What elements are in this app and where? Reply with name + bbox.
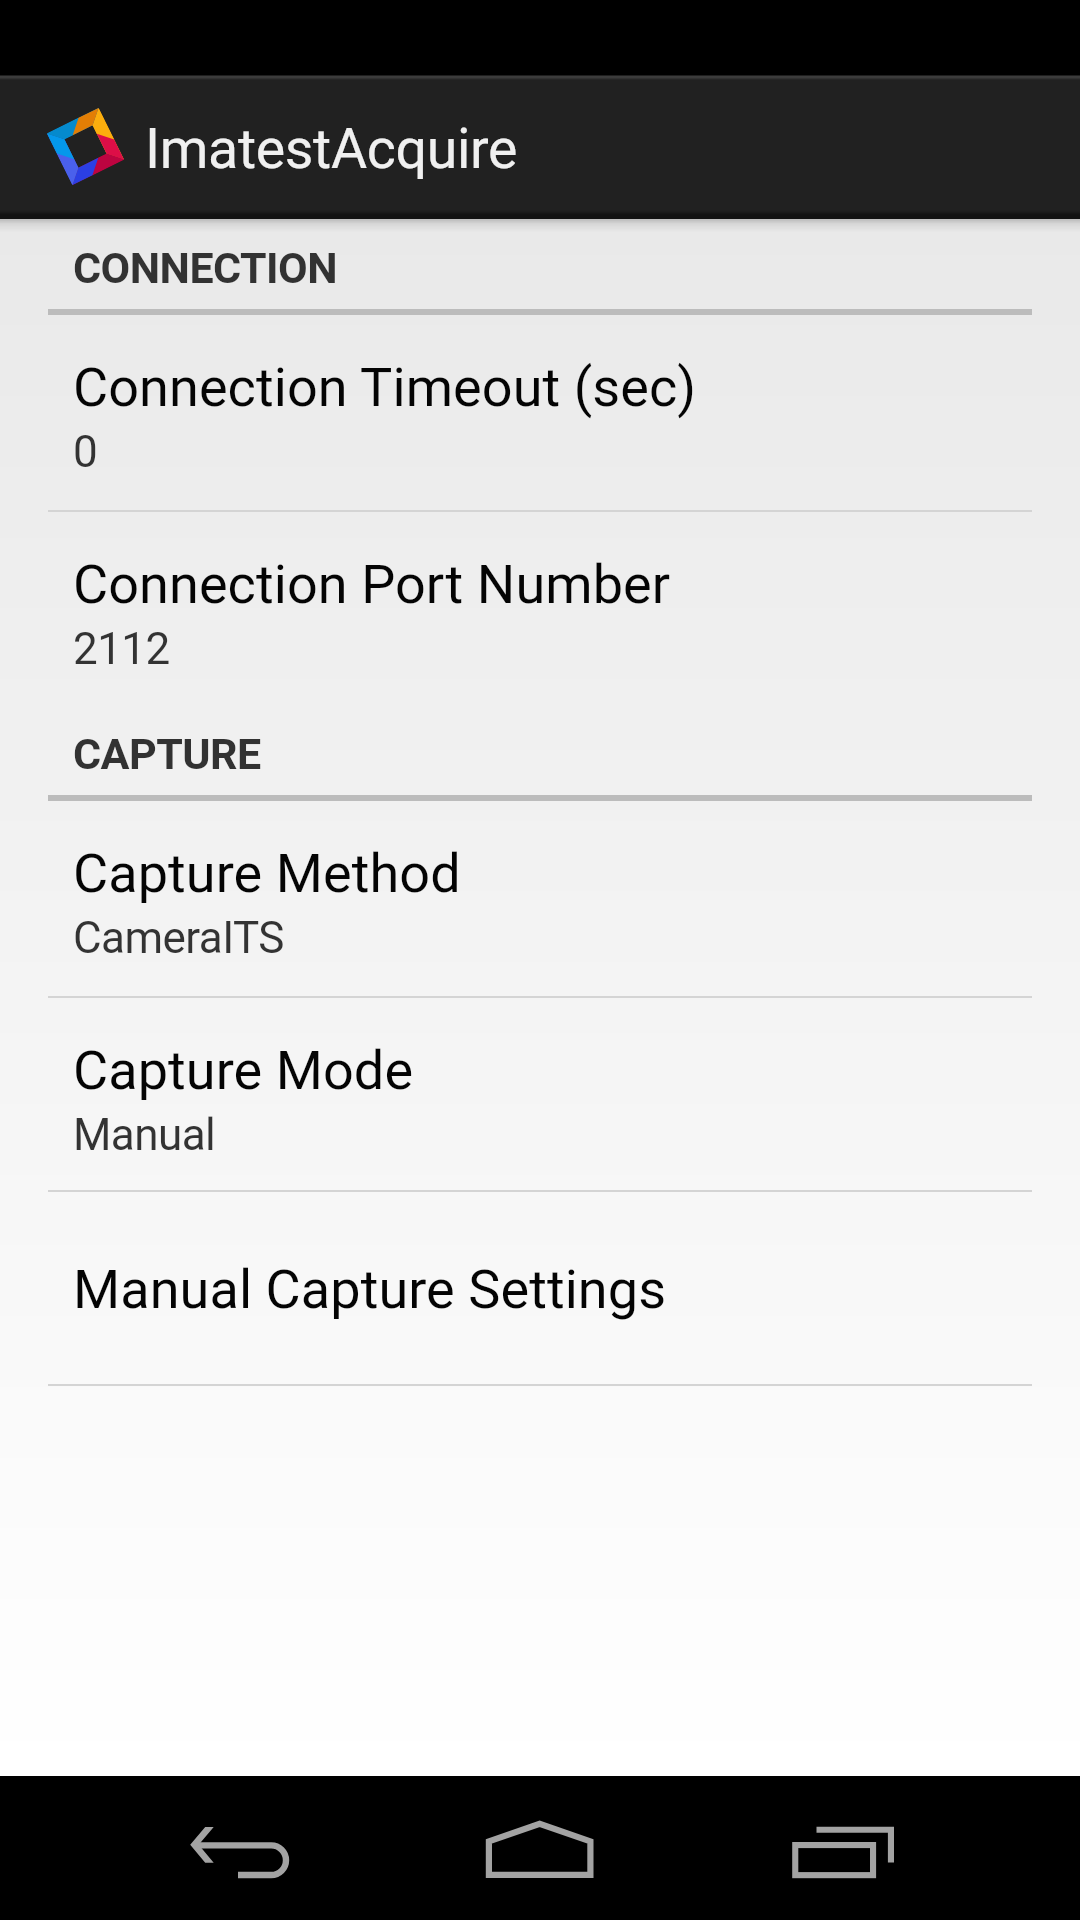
button[interactable]: Connection Port Number bbox=[0, 512, 1080, 707]
button[interactable]: Manual Capture Settings bbox=[0, 1192, 1080, 1384]
staticText: 2112 bbox=[73, 623, 170, 675]
staticText: ImatestAcquire bbox=[145, 117, 518, 182]
staticText: Connection Timeout (sec) bbox=[73, 356, 697, 419]
staticText: Capture Method bbox=[73, 842, 461, 905]
staticText: CONNECTION bbox=[73, 243, 338, 293]
button[interactable]: Capture Method bbox=[0, 801, 1080, 996]
button[interactable]: Home bbox=[480, 1776, 600, 1920]
button[interactable]: Back bbox=[150, 1776, 330, 1920]
staticText: Connection Port Number bbox=[73, 553, 671, 616]
staticText: Manual bbox=[73, 1109, 216, 1161]
button[interactable]: ImatestAcquire bbox=[0, 78, 1080, 213]
staticText: Manual Capture Settings bbox=[73, 1258, 667, 1321]
button[interactable]: Capture Mode bbox=[0, 998, 1080, 1190]
staticText: CAPTURE bbox=[73, 729, 261, 779]
staticText: CameraITS bbox=[73, 912, 284, 964]
staticText: Capture Mode bbox=[73, 1039, 414, 1102]
button[interactable]: Recent apps bbox=[780, 1776, 910, 1920]
staticText: 0 bbox=[73, 426, 98, 478]
button[interactable]: Connection Timeout (sec) bbox=[0, 315, 1080, 510]
